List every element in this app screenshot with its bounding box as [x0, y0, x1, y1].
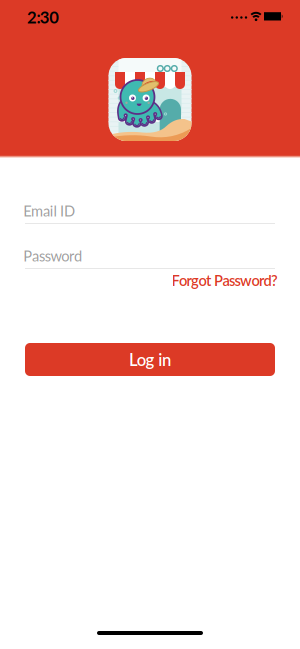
button[interactable]: Forgot Password? — [171, 271, 278, 289]
button[interactable]: Password — [25, 247, 275, 265]
staticText: 2:30 — [27, 7, 59, 27]
staticText: Forgot Password? — [171, 271, 278, 289]
staticText: Log in — [129, 349, 171, 369]
staticText: Password — [23, 247, 82, 265]
button[interactable]: Log in — [25, 343, 275, 376]
staticText: Email ID — [23, 202, 75, 220]
button[interactable]: Email ID — [25, 202, 275, 220]
